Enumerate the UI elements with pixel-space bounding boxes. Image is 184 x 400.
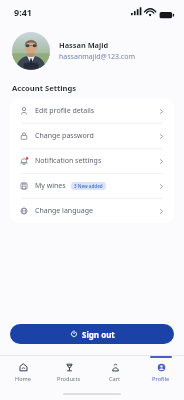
button[interactable]: Notification settings (10, 149, 174, 173)
staticText: Cart (109, 375, 121, 383)
button[interactable]: Sign out (10, 324, 174, 344)
button[interactable]: Change language (10, 199, 174, 223)
staticText: Account Settings (12, 83, 77, 93)
button[interactable]: Products (46, 356, 92, 388)
button[interactable]: Edit profile photo (12, 32, 50, 70)
staticText: Notification settings (35, 156, 102, 166)
staticText: 9:41 (14, 6, 32, 18)
staticText: Sign out (82, 329, 115, 340)
button[interactable]: Change password (10, 124, 174, 148)
staticText: hassanmajid@123.com (59, 52, 135, 62)
staticText: Home (15, 375, 31, 383)
staticText: Change password (35, 131, 94, 141)
staticText: My wines (35, 181, 66, 191)
staticText: Profile (152, 375, 170, 383)
staticText: Hassan Majid (59, 40, 109, 50)
staticText: Products (57, 375, 81, 383)
button[interactable]: Cart (92, 356, 138, 388)
button[interactable]: Edit profile details (10, 99, 174, 123)
staticText: Edit profile details (35, 106, 95, 116)
staticText: 3 New added (74, 183, 103, 189)
button[interactable]: My wines (10, 174, 174, 198)
staticText: Change language (35, 206, 93, 216)
button[interactable]: Profile (138, 356, 184, 388)
button[interactable]: Home (0, 356, 46, 388)
